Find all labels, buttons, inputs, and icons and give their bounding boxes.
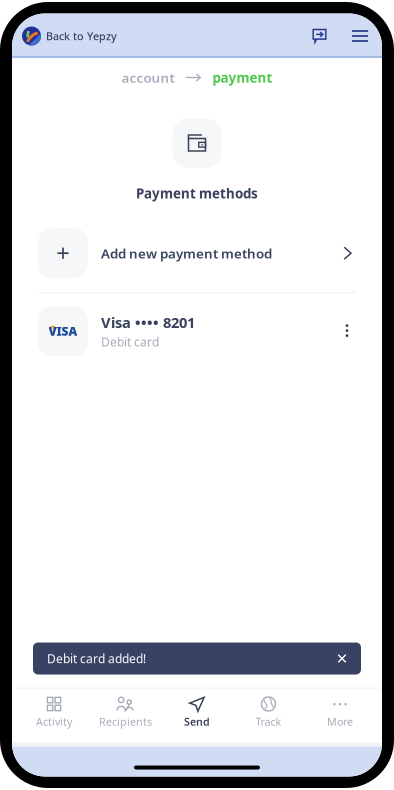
- staticText: Payment methods: [136, 184, 258, 202]
- staticText: Debit card added!: [47, 650, 146, 666]
- staticText: More: [327, 714, 353, 729]
- staticText: Send: [184, 714, 210, 729]
- button[interactable]: Card options: [341, 323, 356, 339]
- button[interactable]: Send: [161, 688, 233, 742]
- button[interactable]: account: [121, 69, 174, 86]
- button[interactable]: More: [304, 688, 376, 742]
- staticText: Visa •••• 8201: [101, 312, 195, 332]
- staticText: Add new payment method: [101, 244, 272, 262]
- button[interactable]: Back to Yepzy: [12, 25, 117, 46]
- button[interactable]: Track: [233, 688, 304, 742]
- button[interactable]: Activity: [18, 688, 90, 742]
- staticText: Recipients: [99, 714, 152, 729]
- button[interactable]: Menu: [334, 25, 382, 46]
- staticText: Back to Yepzy: [46, 29, 117, 43]
- button[interactable]: Add new payment method: [38, 228, 356, 278]
- staticText: account: [121, 69, 174, 86]
- staticText: Track: [255, 714, 281, 729]
- button[interactable]: Dismiss: [336, 652, 361, 664]
- button[interactable]: Messages: [305, 25, 334, 46]
- staticText: Debit card: [101, 334, 159, 350]
- staticText: payment: [212, 69, 272, 86]
- button[interactable]: Recipients: [90, 688, 161, 742]
- staticText: Activity: [36, 714, 72, 729]
- staticText: VISA: [48, 323, 77, 339]
